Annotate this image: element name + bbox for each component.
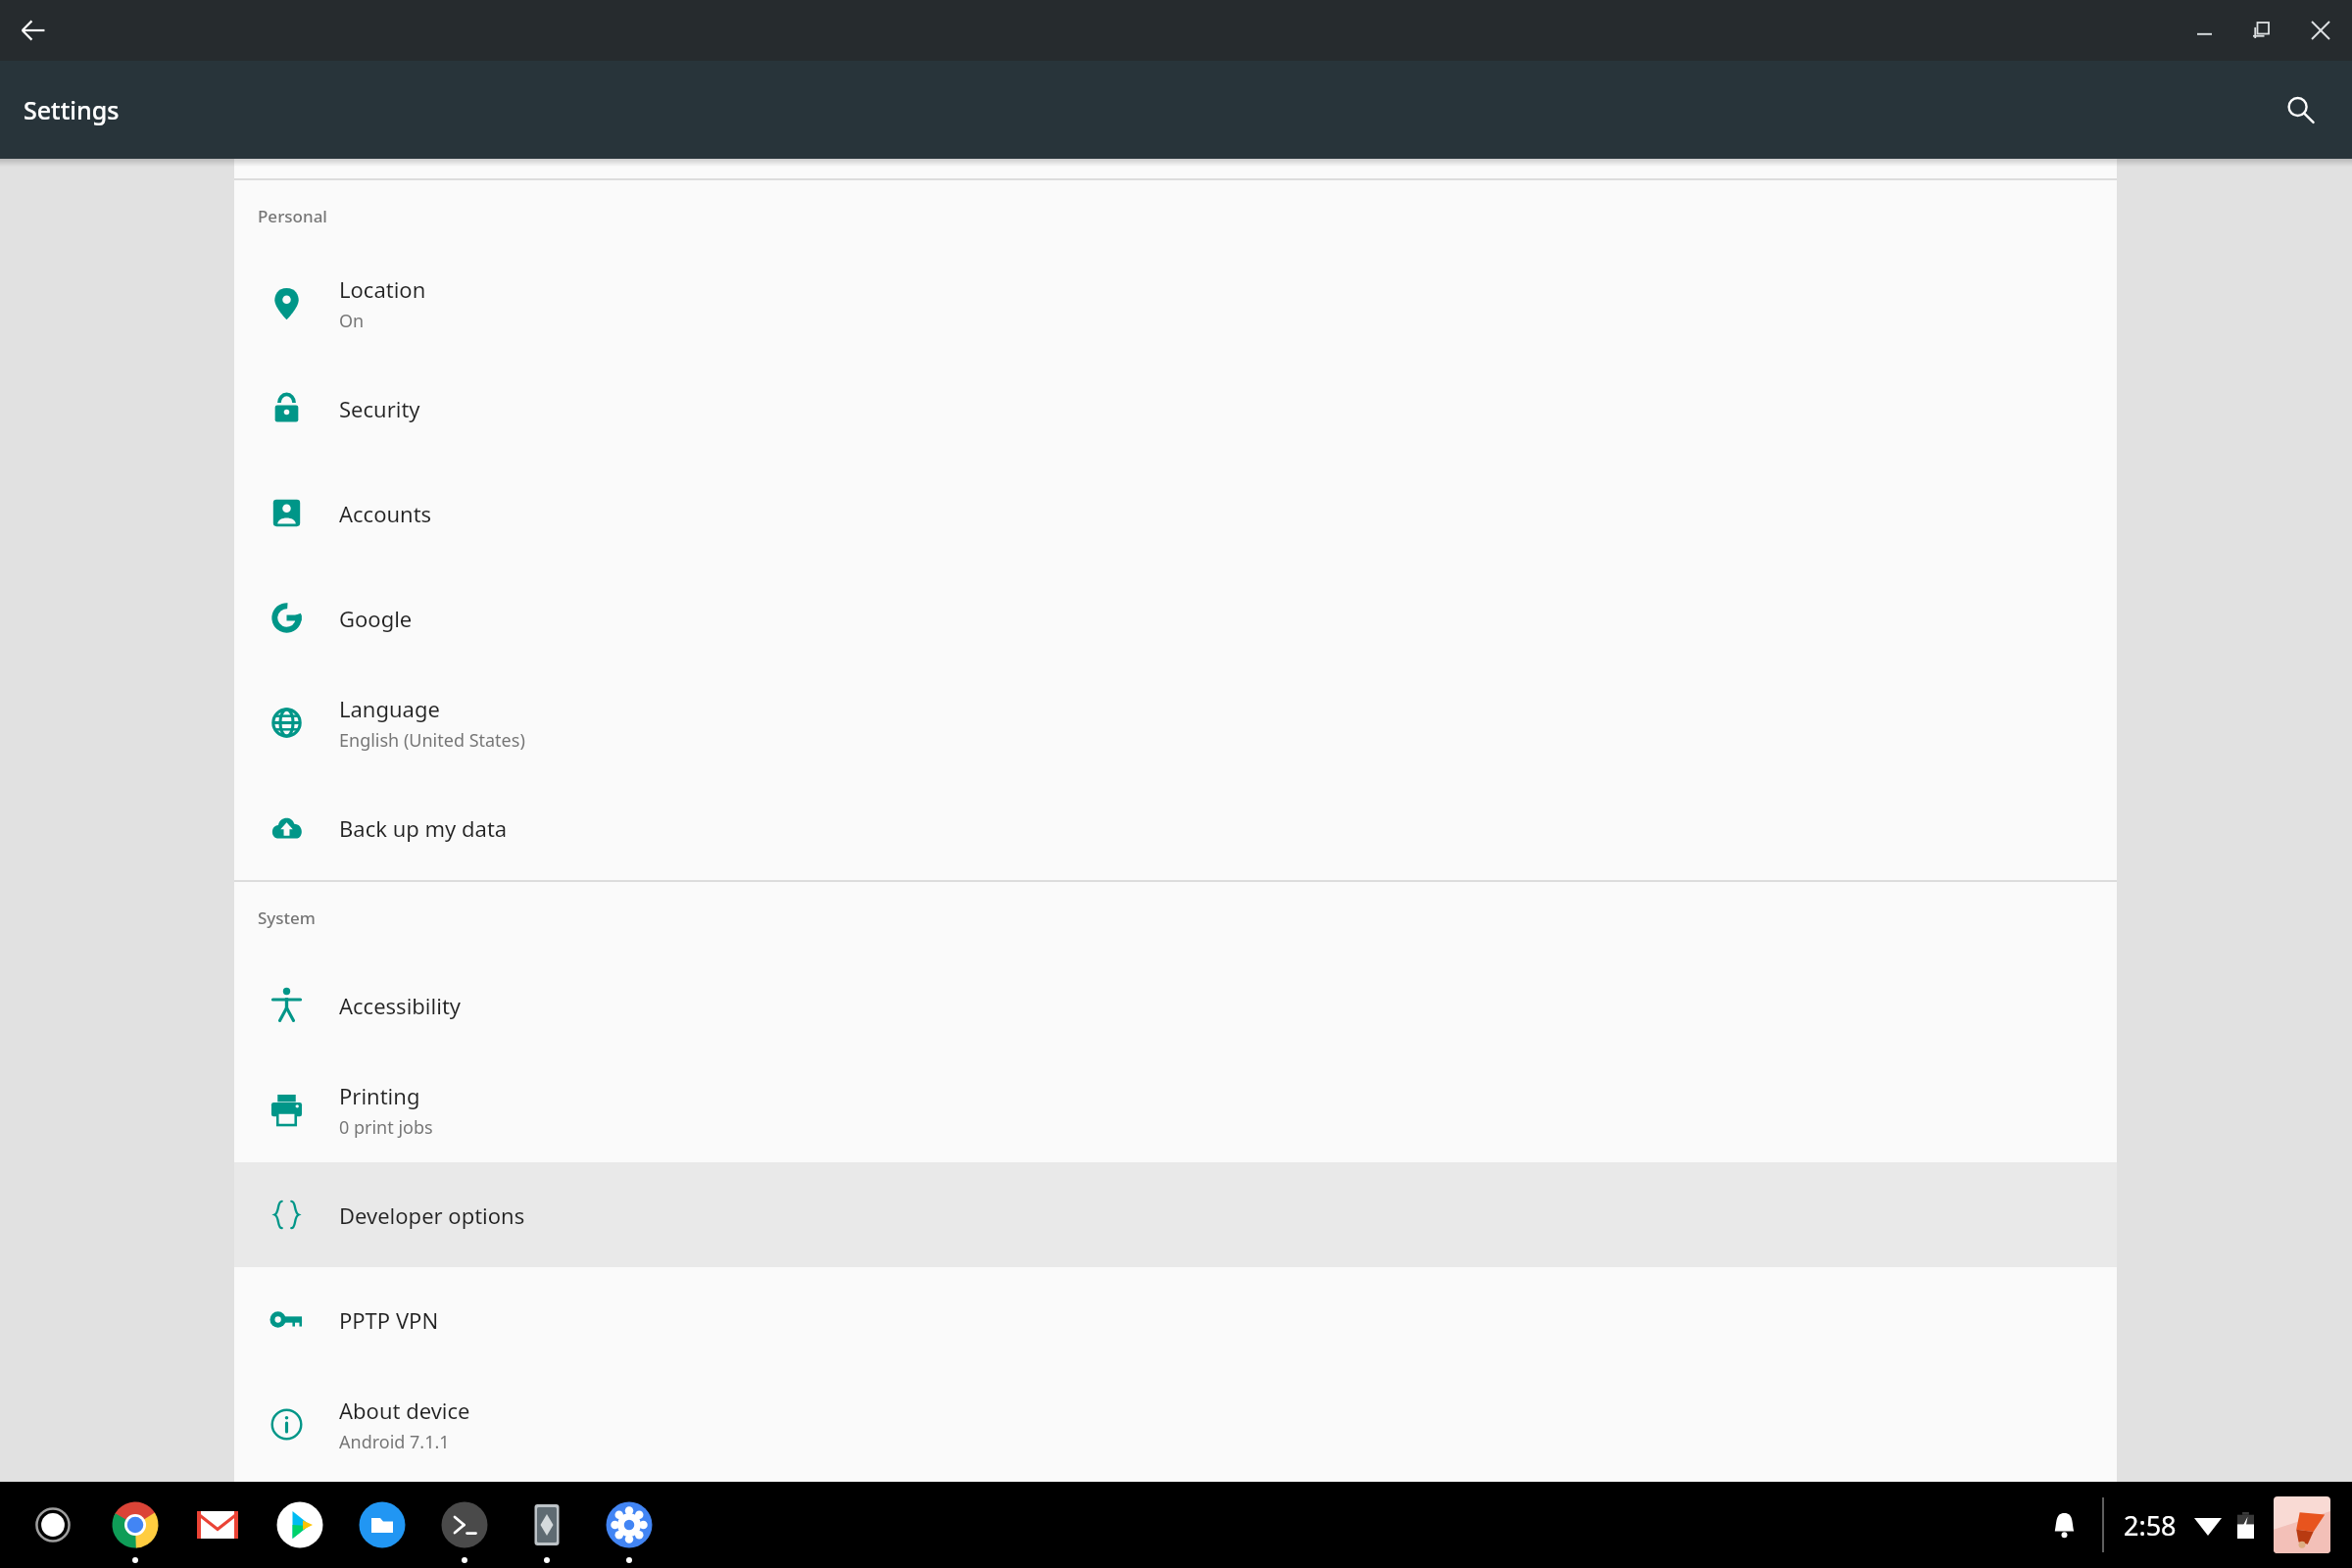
button[interactable]: Accounts bbox=[234, 461, 2117, 565]
staticText: Security bbox=[339, 394, 420, 423]
staticText: Printing bbox=[339, 1081, 420, 1110]
button[interactable]: android bbox=[506, 1482, 588, 1568]
button[interactable]: Back bbox=[6, 3, 61, 58]
button[interactable]: Close bbox=[2289, 0, 2352, 61]
staticText: On bbox=[339, 309, 365, 333]
button[interactable]: settings bbox=[588, 1482, 670, 1568]
button[interactable]: Google bbox=[234, 565, 2117, 670]
button[interactable]: chrome bbox=[94, 1482, 176, 1568]
button[interactable]: Restore bbox=[2232, 0, 2289, 61]
button[interactable]: About device bbox=[234, 1372, 2117, 1477]
staticText: Settings bbox=[24, 93, 120, 126]
staticText: Developer options bbox=[339, 1200, 525, 1230]
button[interactable]: PPTP VPN bbox=[234, 1267, 2117, 1372]
staticText: Location bbox=[339, 274, 426, 304]
button[interactable]: gmail bbox=[176, 1482, 259, 1568]
button[interactable]: Developer options bbox=[234, 1162, 2117, 1267]
button[interactable]: launcher bbox=[12, 1482, 94, 1568]
button[interactable]: Search bbox=[2266, 75, 2334, 144]
button[interactable]: Notifications bbox=[2026, 1482, 2102, 1568]
button[interactable]: terminal bbox=[423, 1482, 506, 1568]
button[interactable]: files bbox=[341, 1482, 423, 1568]
button[interactable]: Language bbox=[234, 670, 2117, 775]
staticText: Language bbox=[339, 694, 440, 723]
button[interactable]: Location bbox=[234, 251, 2117, 356]
button[interactable]: Back up my data bbox=[234, 775, 2117, 880]
button[interactable]: Accessibility bbox=[234, 953, 2117, 1057]
staticText: About device bbox=[339, 1396, 470, 1425]
button[interactable]: Minimize bbox=[2176, 0, 2232, 61]
staticText: Back up my data bbox=[339, 813, 508, 843]
button[interactable]: Account bbox=[2274, 1496, 2330, 1553]
button[interactable]: 2:58 bbox=[2104, 1482, 2274, 1568]
button[interactable]: Security bbox=[234, 356, 2117, 461]
staticText: Google bbox=[339, 604, 413, 633]
button[interactable]: Printing bbox=[234, 1057, 2117, 1162]
staticText: System bbox=[258, 906, 316, 929]
staticText: 0 print jobs bbox=[339, 1115, 433, 1140]
staticText: Accessibility bbox=[339, 991, 462, 1020]
staticText: Android 7.1.1 bbox=[339, 1430, 450, 1454]
staticText: Accounts bbox=[339, 499, 432, 528]
staticText: English (United States) bbox=[339, 728, 525, 753]
staticText: 2:58 bbox=[2124, 1507, 2177, 1543]
staticText: Personal bbox=[258, 205, 327, 227]
button[interactable]: play bbox=[259, 1482, 341, 1568]
staticText: PPTP VPN bbox=[339, 1305, 439, 1335]
